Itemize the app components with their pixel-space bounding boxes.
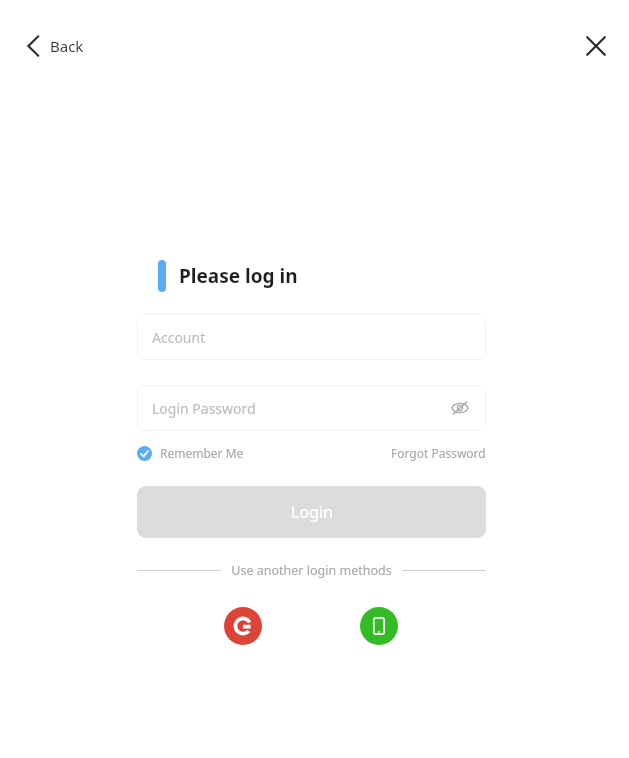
staticText: Please log in bbox=[179, 263, 298, 289]
staticText: Back bbox=[50, 36, 84, 56]
staticText: Account bbox=[152, 328, 206, 347]
staticText: Login Password bbox=[152, 399, 256, 418]
staticText: Login bbox=[291, 501, 333, 523]
button[interactable]: Back bbox=[18, 27, 92, 65]
button[interactable]: Remember Me bbox=[137, 445, 244, 461]
button[interactable]: Forgot Password bbox=[391, 445, 486, 461]
button[interactable]: Account bbox=[137, 314, 486, 360]
staticText: Forgot Password bbox=[391, 445, 486, 461]
button[interactable]: Login Password bbox=[137, 385, 486, 431]
button[interactable]: Login bbox=[137, 486, 486, 538]
button[interactable]: Show password bbox=[449, 397, 471, 419]
button[interactable]: Sign in with Google bbox=[224, 607, 262, 645]
staticText: Use another login methods bbox=[231, 562, 392, 579]
button[interactable]: Sign in with phone number bbox=[360, 607, 398, 645]
staticText: Remember Me bbox=[160, 445, 244, 461]
button[interactable]: Close bbox=[577, 27, 615, 65]
